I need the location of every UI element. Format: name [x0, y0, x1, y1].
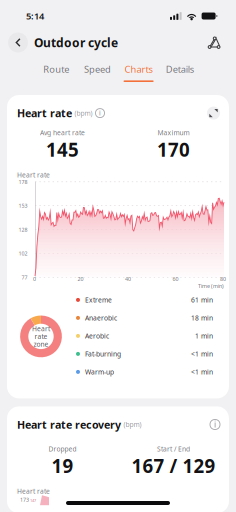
staticText: 61 min: [191, 295, 213, 304]
staticText: 19: [51, 453, 73, 478]
staticText: Charts: [125, 63, 153, 75]
staticText: 0: [33, 275, 36, 282]
staticText: Outdoor cycle: [34, 34, 118, 50]
staticText: Time (min): [198, 282, 224, 289]
staticText: Heart rate recovery: [17, 417, 121, 432]
staticText: 18 min: [191, 313, 213, 322]
staticText: 1 min: [195, 331, 213, 340]
staticText: 178: [18, 178, 27, 185]
button[interactable]: Back: [8, 31, 28, 53]
staticText: Start / End: [157, 445, 190, 453]
staticText: Warm-up: [85, 367, 114, 376]
staticText: Fat-burning: [85, 349, 121, 358]
staticText: Heart rate: [17, 106, 72, 120]
staticText: 167 / 129: [131, 453, 215, 478]
staticText: Anaerobic: [85, 313, 117, 322]
staticText: Route: [43, 63, 69, 75]
button[interactable]: Speed: [82, 58, 112, 84]
staticText: 170: [157, 137, 190, 162]
button[interactable]: Route map: [202, 30, 226, 54]
staticText: 147: [30, 498, 36, 503]
staticText: 20: [77, 275, 83, 282]
staticText: 173: [20, 496, 29, 503]
staticText: 40: [125, 275, 131, 282]
button[interactable]: Charts: [123, 58, 154, 84]
staticText: 60: [172, 275, 178, 282]
staticText: Avg heart rate: [40, 128, 85, 137]
staticText: 77: [21, 274, 27, 281]
staticText: Speed: [84, 63, 111, 75]
button[interactable]: Details: [165, 58, 195, 84]
staticText: i: [99, 108, 101, 117]
staticText: 80: [220, 275, 226, 282]
staticText: Aerobic: [85, 331, 109, 340]
button[interactable]: Route: [41, 58, 71, 84]
staticText: Heart rate: [17, 487, 50, 496]
staticText: <1 min: [191, 349, 213, 358]
staticText: (bpm): [123, 420, 141, 429]
staticText: Details: [166, 63, 194, 75]
staticText: 5:14: [26, 10, 44, 22]
staticText: rate: [34, 332, 47, 341]
staticText: i: [214, 419, 216, 430]
button[interactable]: Expand chart: [207, 107, 220, 120]
staticText: 128: [18, 226, 27, 233]
staticText: Heart rate: [17, 170, 50, 179]
staticText: 153: [18, 202, 27, 209]
staticText: 145: [46, 137, 79, 162]
staticText: (bpm): [74, 109, 92, 118]
staticText: Maximum: [157, 128, 189, 137]
staticText: Extreme: [85, 295, 112, 304]
staticText: Heart: [32, 324, 50, 333]
staticText: zone: [33, 340, 48, 349]
staticText: Dropped: [48, 445, 76, 453]
staticText: 102: [18, 250, 27, 257]
staticText: <1 min: [191, 367, 213, 376]
